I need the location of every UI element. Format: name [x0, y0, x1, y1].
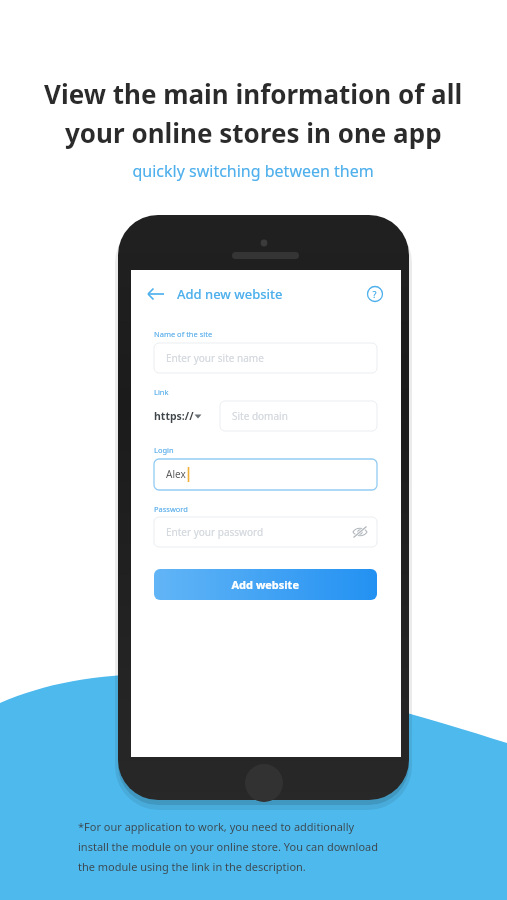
button[interactable]: Name of the site input — [154, 343, 377, 373]
button[interactable]: Add website — [154, 569, 377, 600]
button[interactable]: Password input — [154, 517, 350, 547]
button[interactable]: Back — [147, 285, 166, 304]
button[interactable]: Site domain input — [220, 401, 377, 431]
button[interactable]: Protocol selector https — [154, 401, 212, 431]
button[interactable]: Show password — [350, 521, 372, 543]
button[interactable]: Add new website — [177, 284, 269, 304]
button[interactable]: Help — [366, 284, 385, 303]
button[interactable]: Login input — [154, 459, 377, 490]
